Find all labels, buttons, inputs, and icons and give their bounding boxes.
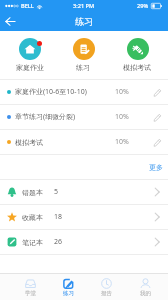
staticText: 章节练习(细微分裂)	[15, 112, 76, 122]
staticText: 10%	[115, 112, 129, 122]
button[interactable]: 更多	[144, 159, 168, 176]
staticText: 5	[54, 187, 59, 197]
staticText: 练习	[75, 16, 93, 27]
staticText: 练习	[76, 63, 90, 72]
staticText: 18	[54, 212, 63, 222]
button[interactable]: 练习	[49, 274, 87, 300]
staticText: 模拟考试	[123, 63, 151, 72]
button[interactable]: 模拟考试	[110, 38, 164, 72]
button[interactable]: 我的	[126, 274, 165, 300]
other: Edit	[151, 111, 163, 123]
button[interactable]: 家庭作业(10-6至10-10)	[0, 80, 168, 104]
staticText: 26	[54, 237, 63, 247]
staticText: 10%	[115, 137, 129, 147]
staticText: 更多	[149, 163, 163, 172]
other: Open	[151, 186, 163, 198]
other: Open	[151, 211, 163, 223]
staticText: 笔记本	[22, 238, 43, 247]
button[interactable]: 报告	[87, 274, 126, 300]
staticText: 收藏本	[22, 213, 43, 222]
button[interactable]: 模拟考试	[0, 130, 168, 154]
button[interactable]: 家庭作业	[3, 38, 56, 72]
staticText: 家庭作业	[16, 63, 44, 72]
staticText: 家庭作业(10-6至10-10)	[15, 87, 87, 97]
button[interactable]: Back	[0, 12, 21, 31]
other: Edit	[151, 136, 163, 148]
staticText: BELL	[21, 2, 34, 10]
staticText: 错题本	[22, 188, 43, 197]
button[interactable]: 错题本	[0, 180, 168, 204]
staticText: 练习	[63, 290, 74, 297]
button[interactable]: 章节练习(细微分裂)	[0, 105, 168, 129]
staticText: 报告	[101, 290, 112, 297]
staticText: 模拟考试	[15, 138, 43, 147]
other: Open	[151, 236, 163, 248]
staticText: 3:21 PM	[73, 2, 95, 10]
staticText: 29%	[137, 2, 149, 10]
button[interactable]: 学堂	[11, 274, 49, 300]
staticText: 10%	[115, 87, 129, 97]
button[interactable]: 收藏本	[0, 205, 168, 229]
button[interactable]: 笔记本	[0, 230, 168, 254]
staticText: 我的	[140, 290, 151, 297]
button[interactable]: 练习	[56, 38, 110, 72]
other: Edit	[151, 86, 163, 98]
staticText: 学堂	[25, 290, 36, 297]
